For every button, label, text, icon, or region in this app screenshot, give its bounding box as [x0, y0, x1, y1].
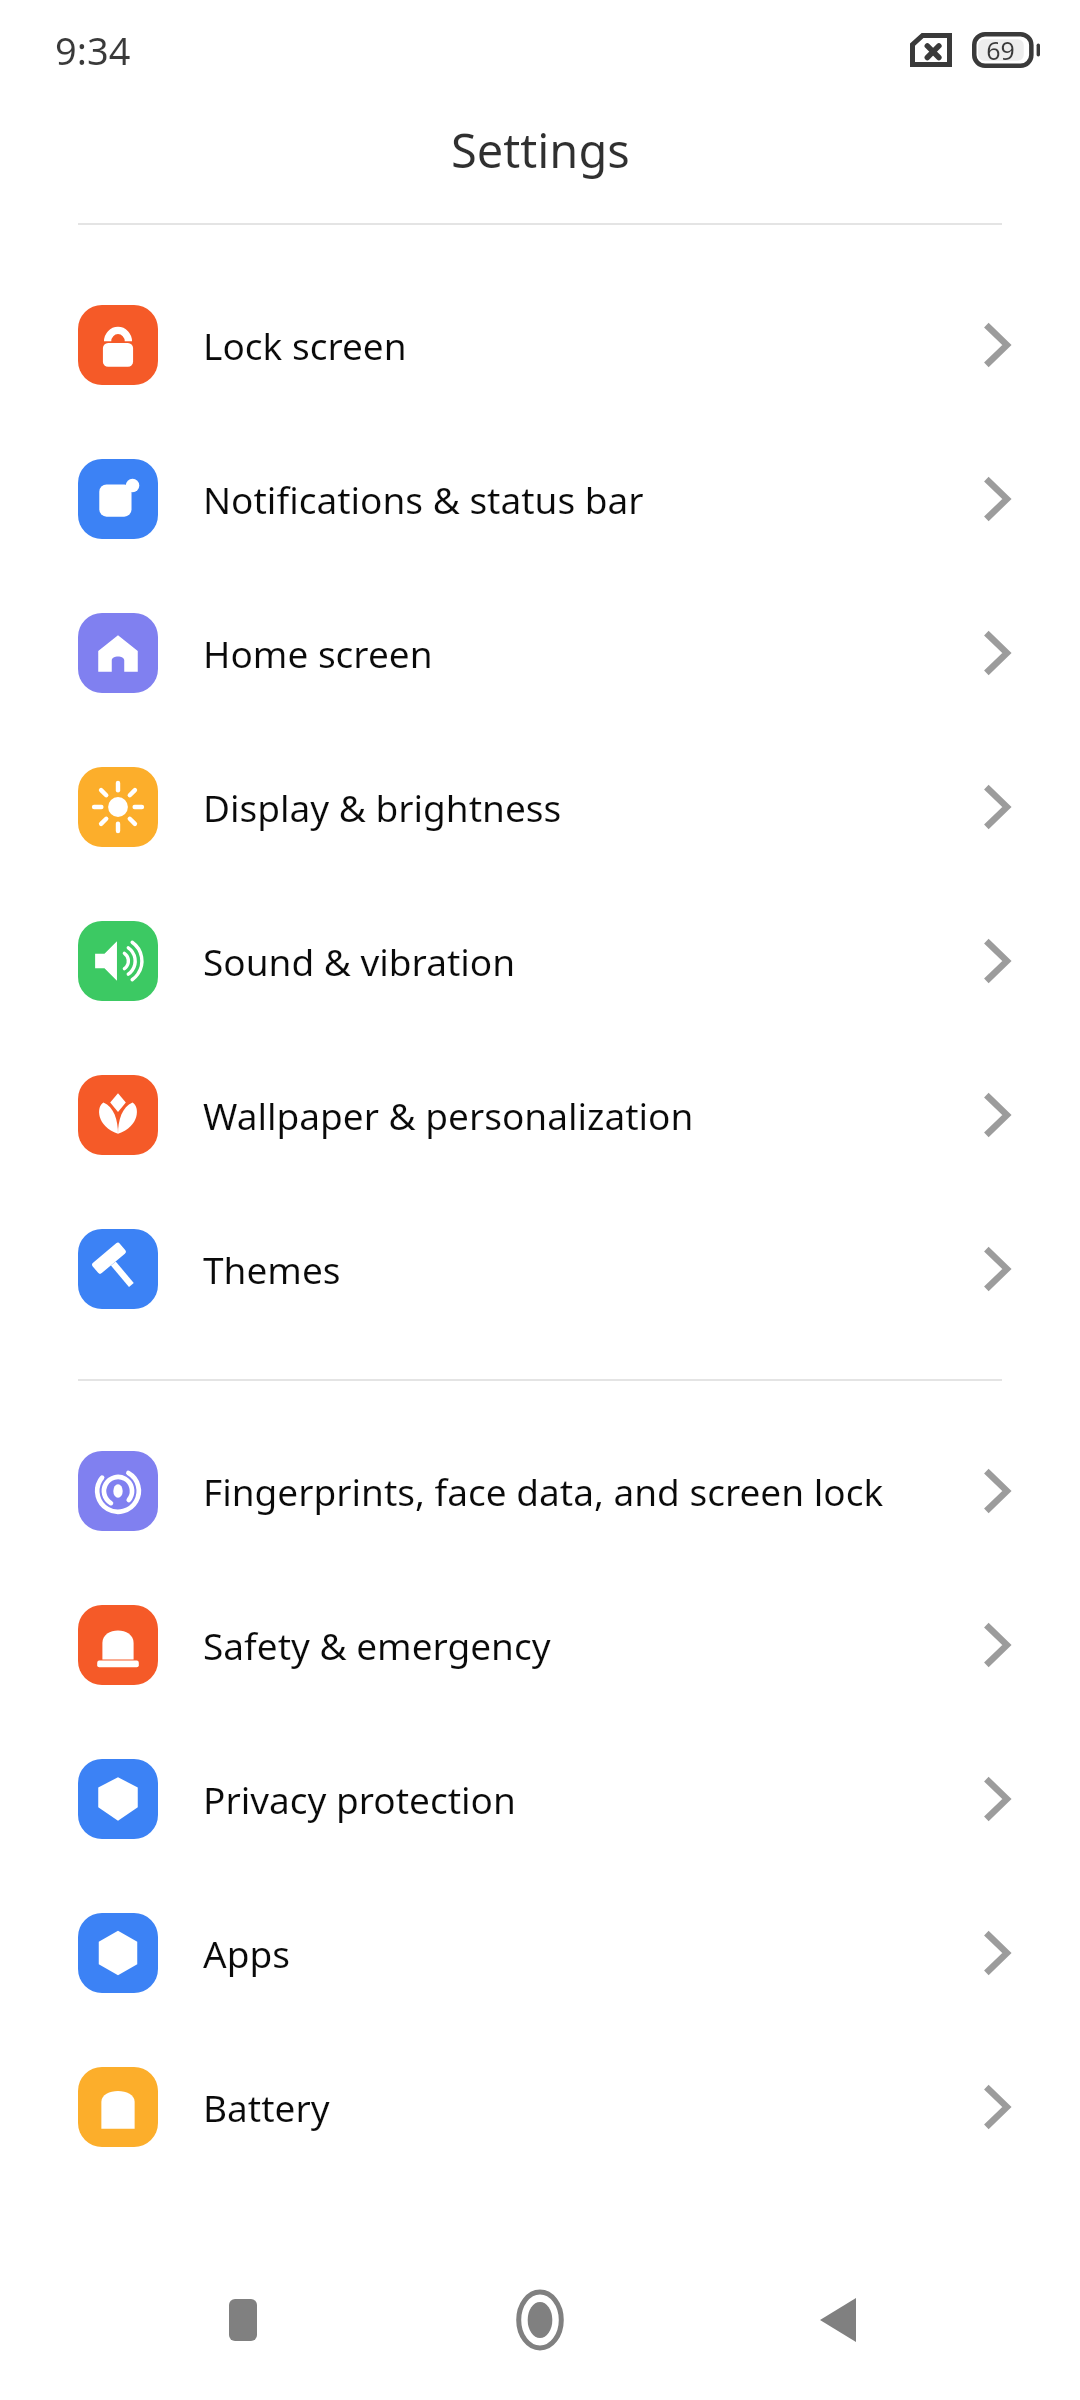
- staticText: Apps: [203, 1928, 968, 1978]
- staticText: 9:34: [55, 24, 131, 76]
- button[interactable]: Safety & emergency: [0, 1568, 1080, 1722]
- staticText: Home screen: [203, 628, 968, 678]
- staticText: Fingerprints, face data, and screen lock: [203, 1466, 968, 1516]
- button[interactable]: Privacy protection: [0, 1722, 1080, 1876]
- button[interactable]: Wallpaper & personalization: [0, 1038, 1080, 1192]
- staticText: Safety & emergency: [203, 1620, 968, 1670]
- button[interactable]: Fingerprints, face data, and screen lock: [0, 1414, 1080, 1568]
- button[interactable]: Themes: [0, 1192, 1080, 1346]
- button[interactable]: Battery: [0, 2030, 1080, 2184]
- button[interactable]: Display & brightness: [0, 730, 1080, 884]
- button[interactable]: Notifications & status bar: [0, 422, 1080, 576]
- button[interactable]: Recent apps: [188, 2265, 298, 2375]
- staticText: Sound & vibration: [203, 936, 968, 986]
- button[interactable]: Back: [783, 2265, 893, 2375]
- staticText: Battery: [203, 2082, 968, 2132]
- button[interactable]: Lock screen: [0, 268, 1080, 422]
- button[interactable]: Home screen: [0, 576, 1080, 730]
- staticText: Notifications & status bar: [203, 474, 968, 524]
- staticText: Themes: [203, 1244, 968, 1294]
- staticText: Settings: [451, 118, 630, 182]
- button[interactable]: Apps: [0, 1876, 1080, 2030]
- button[interactable]: Home: [485, 2265, 595, 2375]
- staticText: 69: [986, 33, 1015, 67]
- staticText: Display & brightness: [203, 782, 968, 832]
- button[interactable]: Sound & vibration: [0, 884, 1080, 1038]
- staticText: Lock screen: [203, 320, 968, 370]
- staticText: Wallpaper & personalization: [203, 1090, 968, 1140]
- staticText: Privacy protection: [203, 1774, 968, 1824]
